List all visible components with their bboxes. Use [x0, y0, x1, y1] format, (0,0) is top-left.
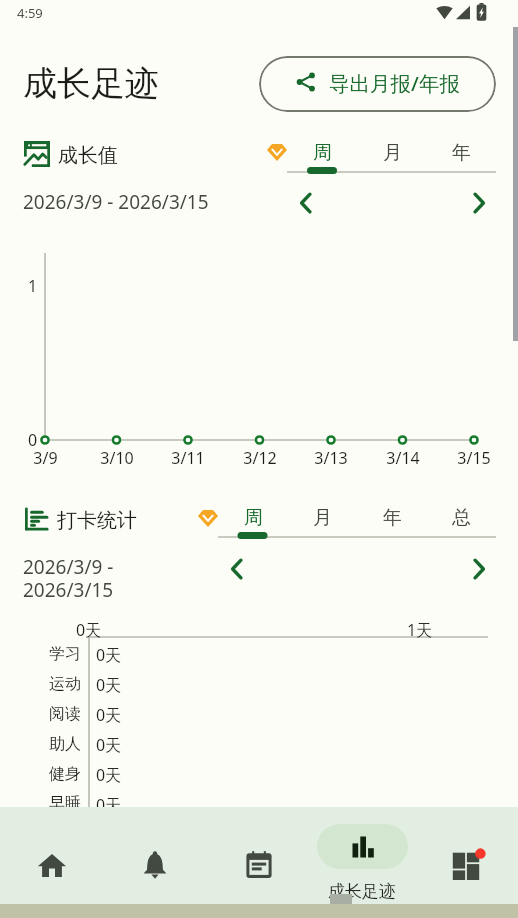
- button[interactable]: 周: [218, 497, 288, 539]
- staticText: 健身: [49, 764, 81, 784]
- staticText: 3/10: [100, 447, 134, 469]
- staticText: 3/12: [243, 447, 277, 469]
- staticText: 成长足迹: [23, 62, 159, 105]
- staticText: 成长值: [58, 143, 118, 168]
- staticText: 导出月报/年报: [329, 69, 460, 97]
- button[interactable]: 年: [357, 497, 427, 539]
- staticText: 阅读: [49, 704, 81, 724]
- staticText: 学习: [49, 644, 81, 664]
- staticText: 周: [244, 506, 263, 530]
- staticText: 0天: [96, 764, 122, 786]
- button[interactable]: 首页: [20, 842, 84, 887]
- staticText: 3/15: [457, 447, 491, 469]
- staticText: 0天: [96, 734, 122, 756]
- staticText: 3/11: [171, 447, 205, 469]
- staticText: 0天: [96, 794, 122, 807]
- staticText: 年: [452, 141, 471, 165]
- staticText: 4:59: [17, 4, 43, 22]
- button[interactable]: Previous: [284, 181, 328, 225]
- staticText: 总: [452, 506, 471, 530]
- button[interactable]: 日历: [227, 842, 291, 887]
- staticText: 月: [383, 141, 402, 165]
- staticText: 0天: [96, 704, 122, 726]
- staticText: 运动: [49, 674, 81, 694]
- staticText: 打卡统计: [57, 508, 137, 533]
- button[interactable]: 导出月报/年报: [259, 56, 496, 112]
- staticText: 早睡: [49, 794, 81, 807]
- staticText: 0天: [96, 644, 122, 666]
- staticText: 成长足迹: [328, 881, 396, 902]
- staticText: 2026/3/9 - 2026/3/15: [23, 189, 209, 215]
- staticText: 周: [313, 141, 332, 165]
- button[interactable]: Previous: [215, 547, 259, 591]
- staticText: 年: [383, 506, 402, 530]
- staticText: 0天: [76, 619, 102, 641]
- staticText: 1: [28, 275, 38, 297]
- staticText: 月: [313, 506, 332, 530]
- button[interactable]: Next: [457, 547, 501, 591]
- staticText: 0天: [96, 674, 122, 696]
- staticText: 2026/3/15: [23, 577, 114, 603]
- staticText: 0: [28, 429, 38, 451]
- button[interactable]: 周: [287, 132, 357, 174]
- staticText: 1天: [407, 619, 433, 641]
- button[interactable]: 总: [426, 497, 496, 539]
- staticText: 3/9: [33, 447, 58, 469]
- button[interactable]: 月: [287, 497, 357, 539]
- staticText: 助人: [49, 734, 81, 754]
- button[interactable]: 年: [426, 132, 496, 174]
- staticText: 3/14: [386, 447, 420, 469]
- button[interactable]: Next: [457, 181, 501, 225]
- button[interactable]: 提醒: [123, 842, 187, 887]
- staticText: 3/13: [314, 447, 348, 469]
- button[interactable]: 成长足迹: [317, 824, 408, 869]
- button[interactable]: 更多: [434, 842, 498, 887]
- staticText: 2026/3/9 -: [23, 554, 114, 580]
- button[interactable]: 月: [357, 132, 427, 174]
